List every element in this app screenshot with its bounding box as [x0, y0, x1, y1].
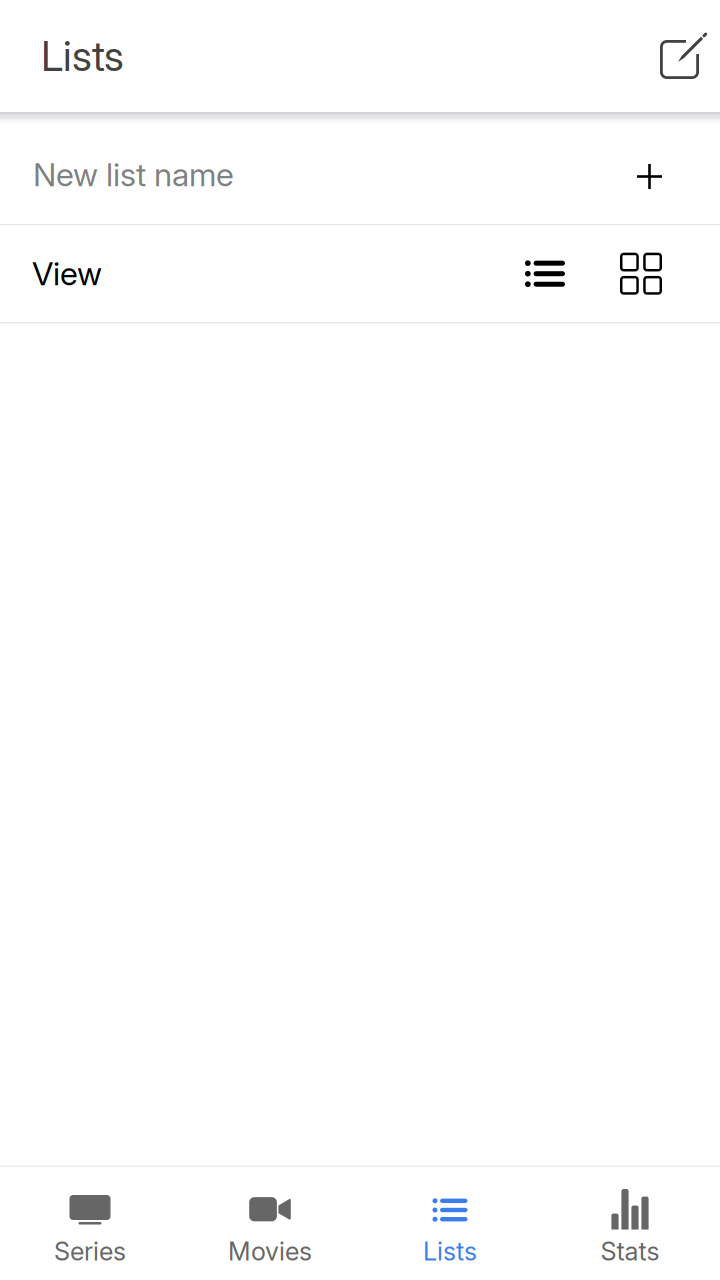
staticText: New list name [33, 155, 234, 194]
button[interactable]: Lists [360, 1167, 540, 1280]
staticText: Movies [228, 1236, 312, 1267]
button[interactable]: List view [525, 260, 565, 287]
button[interactable]: Movies [180, 1167, 360, 1280]
staticText: Stats [600, 1236, 659, 1267]
button[interactable]: Stats [540, 1167, 720, 1280]
staticText: Series [54, 1236, 126, 1267]
button[interactable]: Add list [637, 162, 662, 187]
button[interactable]: New list [660, 32, 707, 79]
staticText: Lists [423, 1236, 477, 1267]
button[interactable]: Series [0, 1167, 180, 1280]
button[interactable]: Grid view [620, 253, 662, 295]
staticText: Lists [41, 31, 124, 81]
staticText: View [32, 254, 102, 293]
